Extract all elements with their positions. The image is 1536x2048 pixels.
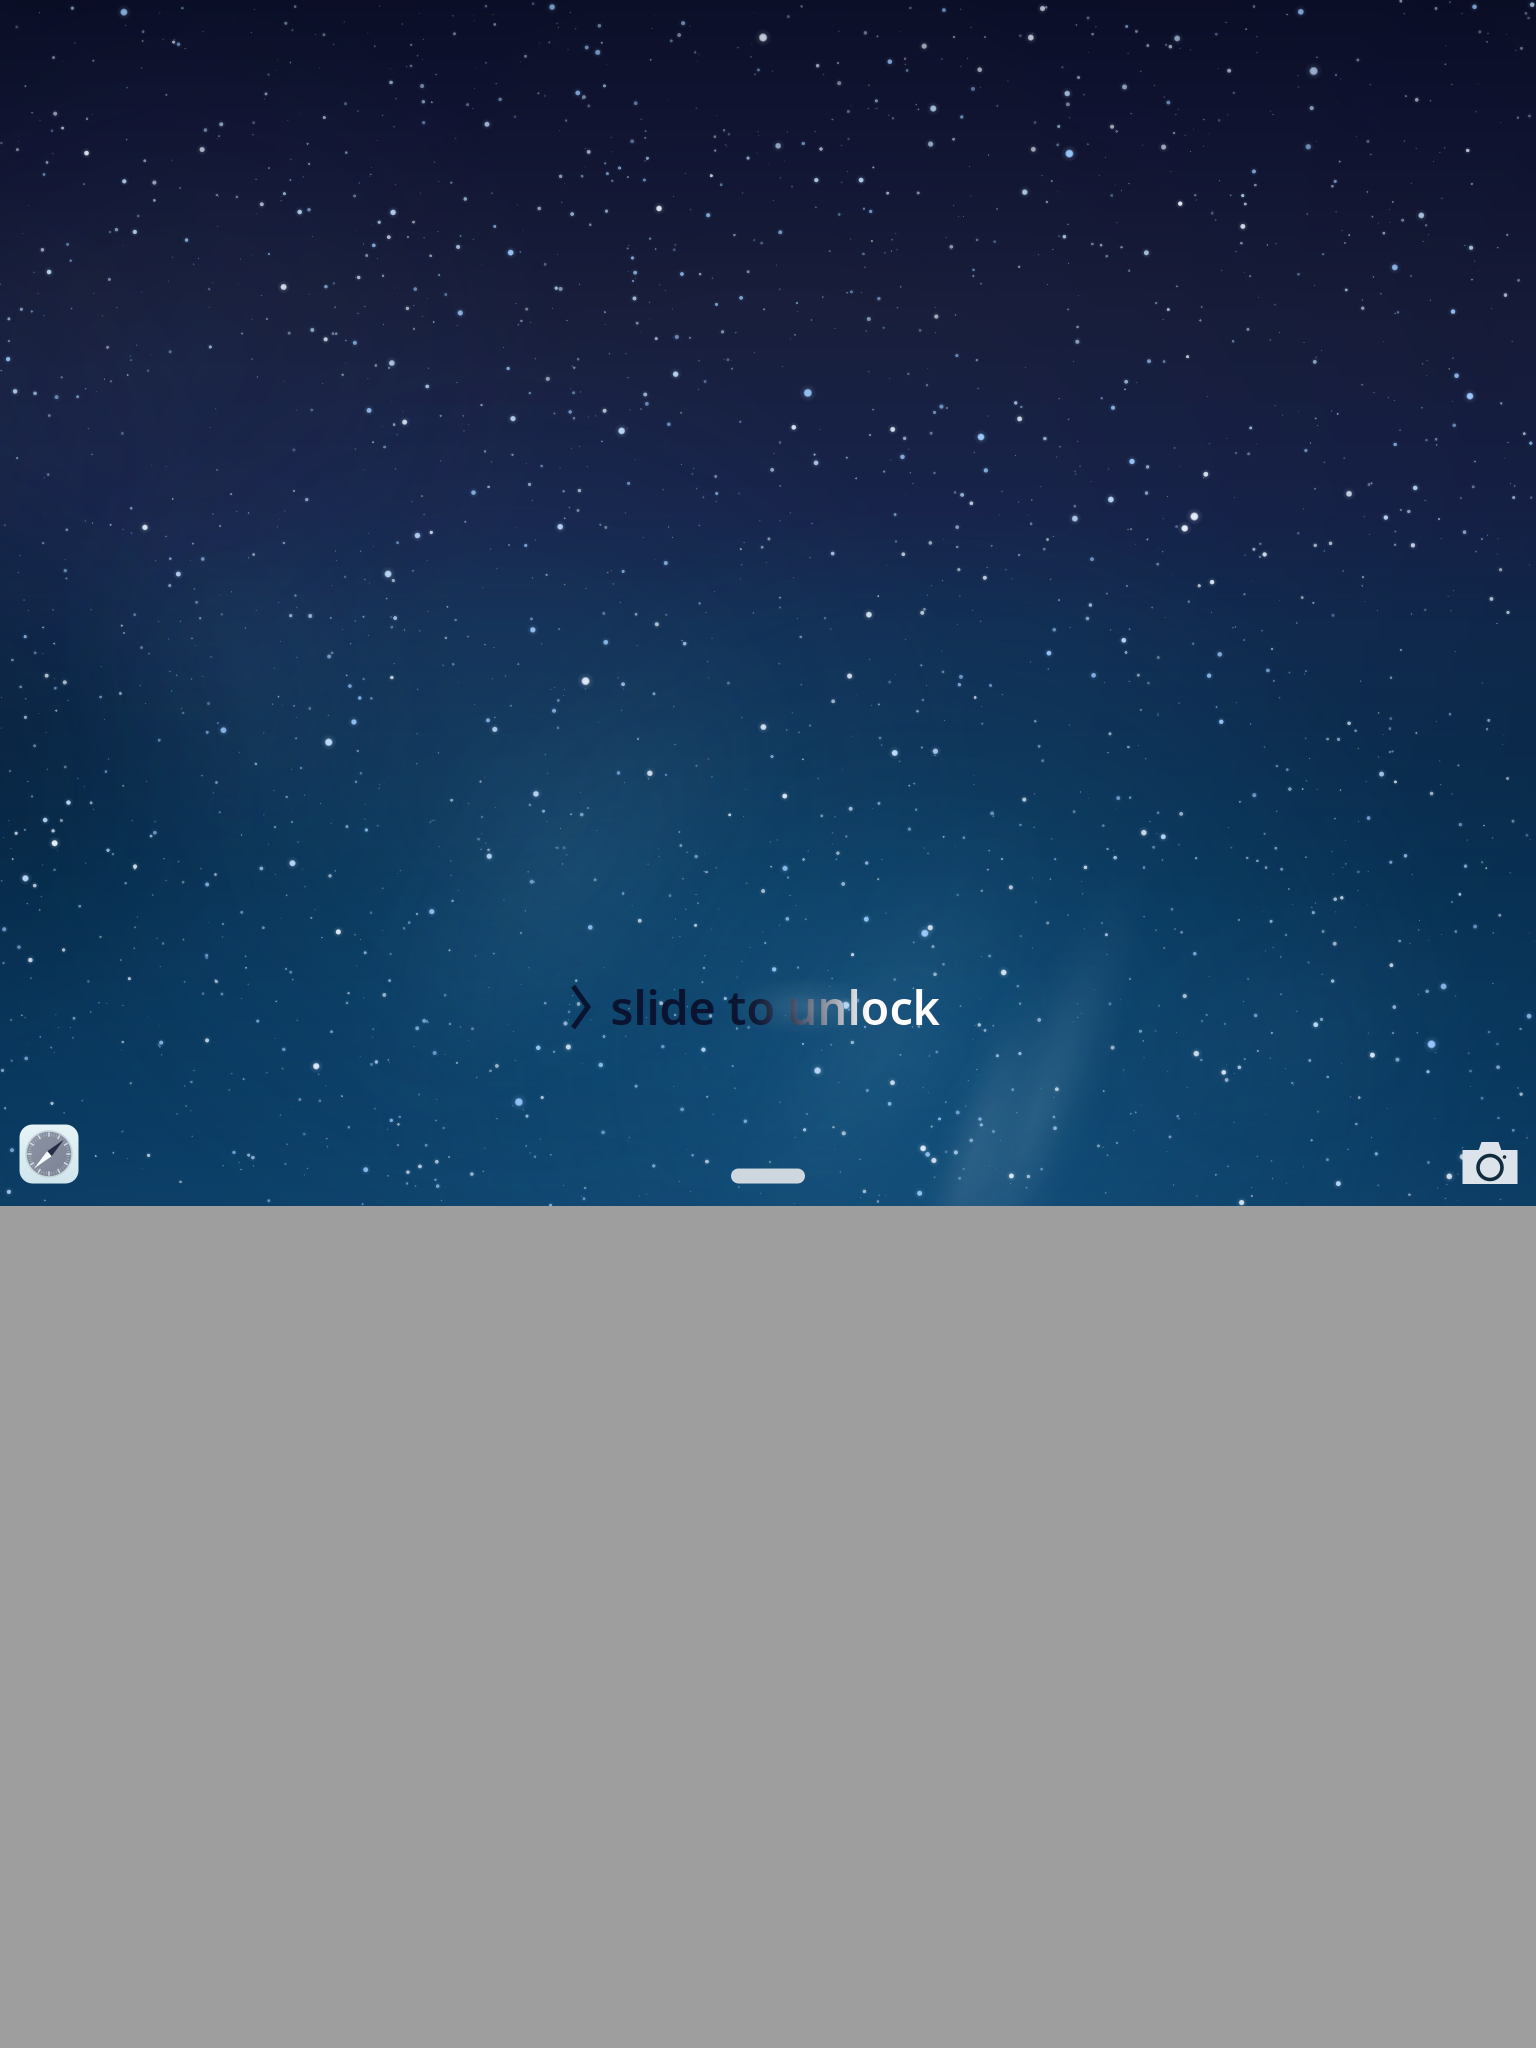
button[interactable]: Safari bbox=[19, 1124, 78, 1183]
button[interactable]: Control Center bbox=[731, 1168, 805, 1183]
button[interactable]: slide to unlock bbox=[565, 977, 945, 1037]
staticText: slide to unlock bbox=[610, 976, 939, 1038]
button[interactable]: Camera bbox=[1462, 1142, 1517, 1184]
